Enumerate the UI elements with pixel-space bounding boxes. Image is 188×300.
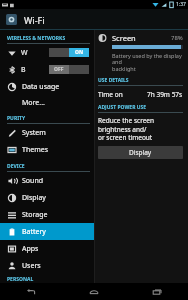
staticText: Themes (22, 145, 49, 155)
button[interactable]: Back (0, 283, 62, 300)
staticText: PERSONAL (7, 276, 34, 283)
button[interactable]: Users (0, 257, 94, 274)
staticText: ADJUST POWER USE (98, 104, 147, 111)
button[interactable]: Themes (0, 141, 94, 158)
staticText: Sound (22, 176, 44, 186)
button[interactable]: Bluetooth off (49, 65, 89, 74)
button[interactable]: More... (0, 95, 94, 110)
staticText: Users (22, 261, 41, 271)
staticText: PURITY (7, 115, 26, 122)
button[interactable]: B (0, 61, 94, 78)
staticText: 78% (171, 34, 183, 42)
staticText: OFF (54, 66, 64, 73)
button[interactable]: Apps (0, 240, 94, 257)
staticText: USE DETAILS (98, 77, 129, 84)
staticText: W (21, 48, 28, 58)
staticText: B (21, 65, 26, 75)
staticText: WIRELESS & NETWORKS (7, 35, 66, 42)
button[interactable]: Recent apps (125, 283, 188, 300)
button[interactable]: Sound (0, 172, 94, 189)
button[interactable]: Data usage (0, 78, 94, 95)
button[interactable]: Display (98, 146, 183, 159)
button[interactable]: Home (62, 283, 125, 300)
staticText: Screen (112, 33, 136, 43)
staticText: 1:37 (176, 1, 186, 8)
staticText: Time on (98, 90, 123, 99)
staticText: Apps (22, 244, 39, 254)
staticText: Storage (22, 210, 48, 220)
staticText: DEVICE (7, 163, 25, 170)
button[interactable]: Wi-Fi on (49, 48, 89, 57)
button[interactable]: Battery (0, 223, 94, 240)
staticText: 7h 39m 57s (147, 90, 183, 99)
staticText: Reduce the screen brightness and/ or scr… (98, 116, 183, 142)
button[interactable]: W (0, 44, 94, 61)
staticText: Display (129, 148, 152, 157)
staticText: System (22, 128, 46, 138)
button[interactable]: Display (0, 189, 94, 206)
staticText: ON (75, 49, 84, 56)
staticText: Battery (22, 227, 46, 237)
staticText: Wi-Fi (24, 14, 45, 26)
staticText: Data usage (22, 82, 60, 92)
staticText: More... (22, 98, 45, 108)
button[interactable]: System (0, 124, 94, 141)
staticText: Battery used by the display and backligh… (112, 52, 183, 73)
staticText: Display (22, 193, 46, 203)
button[interactable]: Storage (0, 206, 94, 223)
